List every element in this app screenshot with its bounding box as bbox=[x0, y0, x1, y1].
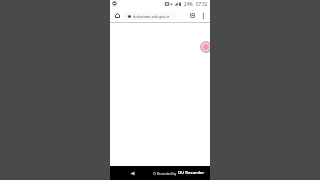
staticText: dokuman.aile.gov.tr bbox=[133, 14, 170, 19]
button[interactable]: Back bbox=[128, 169, 137, 178]
staticText: Recorded by bbox=[157, 171, 177, 175]
button[interactable]: More options bbox=[199, 11, 208, 20]
button[interactable]: Floating assistant bbox=[200, 41, 210, 53]
button[interactable]: Switch tabs bbox=[188, 11, 197, 20]
staticText: 24% bbox=[184, 1, 193, 7]
staticText: 07:32 bbox=[196, 1, 208, 7]
button[interactable]: dokuman.aile.gov.tr bbox=[122, 12, 177, 20]
staticText: DU Recorder bbox=[178, 170, 205, 176]
button[interactable]: Home bbox=[113, 11, 122, 20]
